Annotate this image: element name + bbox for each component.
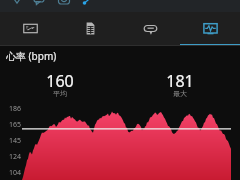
staticText: 最大 bbox=[173, 89, 187, 98]
staticText: 181 bbox=[166, 70, 194, 92]
button[interactable]: Gallery bbox=[0, 12, 60, 46]
staticText: 104 bbox=[9, 168, 22, 178]
staticText: 186 bbox=[9, 104, 22, 114]
button[interactable]: Repeat bbox=[120, 12, 180, 46]
staticText: 165 bbox=[9, 120, 22, 130]
staticText: 160 bbox=[46, 70, 74, 92]
staticText: 平均 bbox=[53, 89, 67, 98]
staticText: 心率 (bpm) bbox=[6, 49, 57, 63]
button[interactable]: Heart rate bbox=[180, 12, 240, 46]
staticText: 124 bbox=[9, 152, 22, 162]
button[interactable]: Documents bbox=[60, 12, 120, 46]
staticText: 145 bbox=[9, 136, 22, 146]
